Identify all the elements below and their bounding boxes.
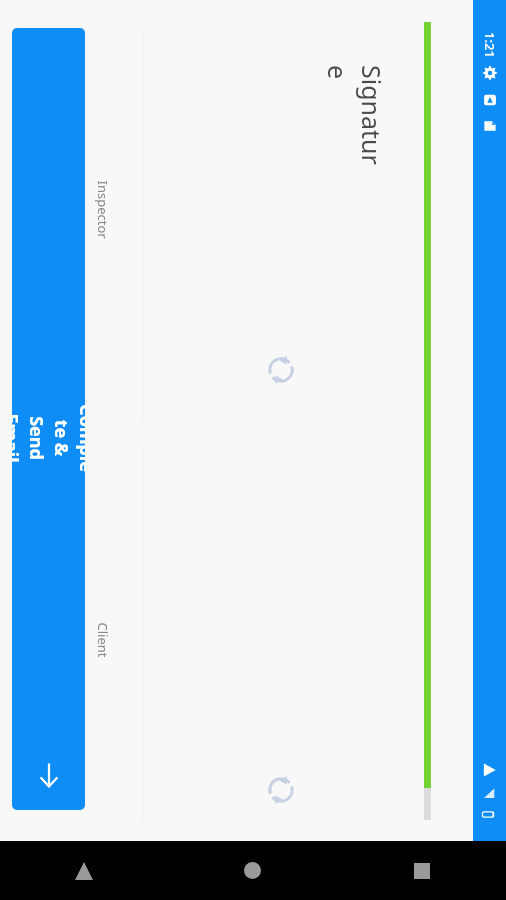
staticText: Signature bbox=[321, 65, 389, 175]
staticText: Inspector bbox=[93, 180, 111, 239]
button[interactable]: Complete & Send Email bbox=[12, 28, 85, 810]
staticText: Client bbox=[93, 622, 111, 657]
button[interactable]: Clear inspector signature bbox=[256, 345, 306, 395]
button[interactable]: Back bbox=[0, 841, 168, 900]
button[interactable]: Clear client signature bbox=[256, 765, 306, 815]
staticText: Complete & Send Email bbox=[12, 401, 85, 474]
button[interactable]: Recent apps bbox=[337, 841, 506, 900]
staticText: 1:21 bbox=[481, 32, 499, 58]
button[interactable]: Home bbox=[168, 841, 337, 900]
